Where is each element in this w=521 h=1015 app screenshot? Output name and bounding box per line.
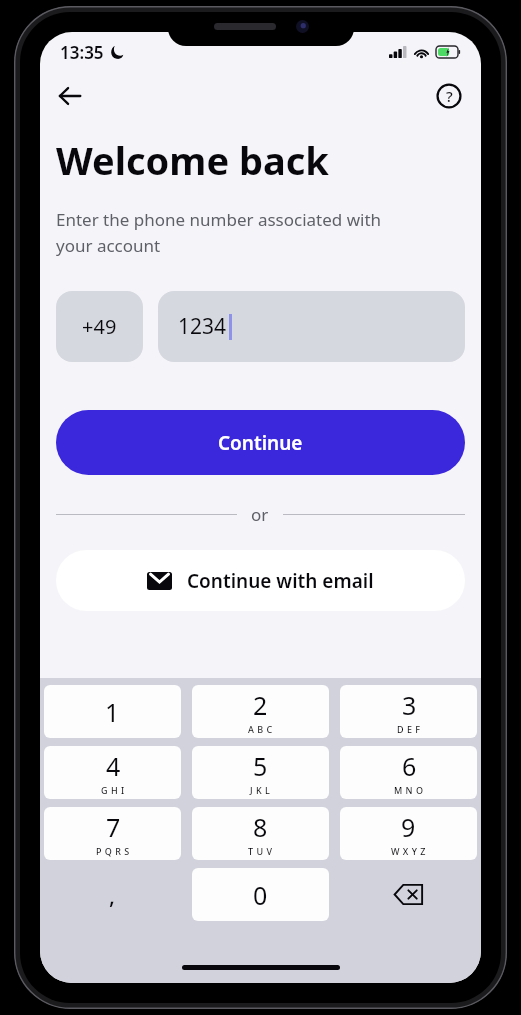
staticText: G H I: [101, 784, 125, 796]
staticText: W X Y Z: [391, 845, 426, 857]
staticText: 8: [253, 810, 268, 844]
button[interactable]: Continue with email: [56, 550, 465, 611]
button[interactable]: 8: [192, 807, 329, 860]
staticText: 2: [253, 688, 268, 722]
button[interactable]: 5: [192, 746, 329, 799]
staticText: ?: [446, 86, 453, 106]
button[interactable]: 0: [192, 868, 329, 921]
staticText: J K L: [250, 784, 271, 796]
staticText: 7: [106, 810, 121, 844]
staticText: 3: [402, 688, 417, 722]
button[interactable]: 7: [44, 807, 181, 860]
button[interactable]: 1: [44, 685, 181, 738]
staticText: +49: [82, 313, 117, 340]
button[interactable]: 3: [340, 685, 477, 738]
staticText: P Q R S: [96, 845, 130, 857]
button[interactable]: +49: [56, 291, 143, 362]
staticText: Continue: [218, 430, 303, 456]
button[interactable]: 2: [192, 685, 329, 738]
staticText: 4: [106, 749, 121, 783]
staticText: 13:35: [60, 41, 104, 64]
button[interactable]: 9: [340, 807, 477, 860]
staticText: ,: [109, 880, 116, 910]
staticText: Enter the phone number associated with y…: [56, 208, 382, 257]
button[interactable]: 4: [44, 746, 181, 799]
staticText: M N O: [394, 784, 424, 796]
button[interactable]: Help: [427, 74, 471, 118]
staticText: 9: [401, 810, 416, 844]
staticText: Continue with email: [187, 568, 374, 594]
staticText: 1: [105, 695, 120, 729]
staticText: D E F: [397, 723, 421, 735]
staticText: A B C: [248, 723, 273, 735]
staticText: 0: [253, 878, 268, 912]
staticText: 6: [402, 749, 417, 783]
staticText: 5: [253, 749, 268, 783]
staticText: T U V: [248, 845, 273, 857]
staticText: 1234: [178, 312, 227, 341]
button[interactable]: Delete: [340, 868, 477, 921]
staticText: Welcome back: [56, 134, 329, 186]
staticText: or: [251, 503, 269, 526]
button[interactable]: 6: [340, 746, 477, 799]
button[interactable]: Back: [48, 74, 92, 118]
button[interactable]: ,: [44, 868, 181, 921]
button[interactable]: Continue: [56, 410, 465, 475]
button[interactable]: 1234: [158, 291, 465, 362]
